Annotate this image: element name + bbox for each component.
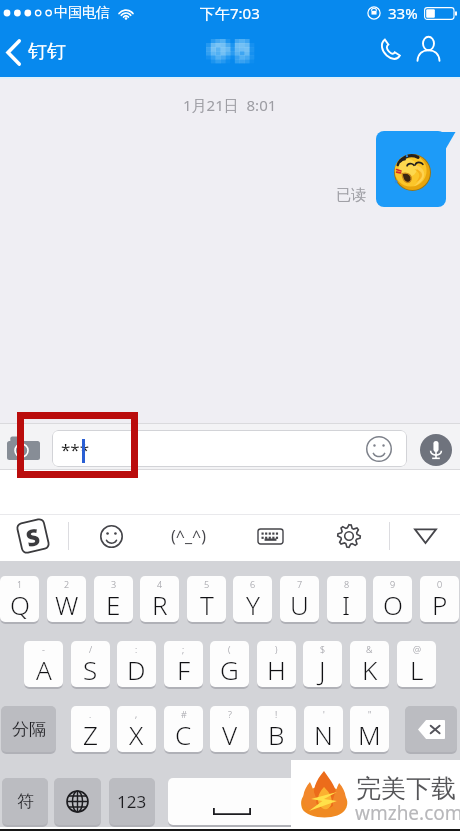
staticText: ) [275, 643, 278, 655]
staticText: Q [10, 587, 30, 622]
button[interactable]: 2 [47, 576, 86, 622]
staticText: 完美下载 [356, 773, 456, 804]
button[interactable]: 8 [327, 576, 366, 622]
staticText: wmzhe.com [355, 800, 460, 826]
staticText: 符 [17, 791, 34, 812]
button[interactable]: 1 [0, 576, 39, 622]
staticText: 钉钉 [28, 40, 66, 64]
button[interactable]: Sogou input [8, 512, 58, 560]
button[interactable]: 6 [233, 576, 272, 622]
staticText: 下午7:03 [200, 3, 260, 23]
staticText: 已读 [336, 186, 366, 205]
button[interactable]: & [350, 641, 389, 687]
staticText: 中国电信 [54, 4, 110, 22]
staticText: B [268, 717, 285, 752]
staticText: P [432, 587, 448, 622]
staticText: K [362, 652, 378, 687]
button[interactable]: Switch language [54, 778, 101, 825]
button[interactable]: 3 [94, 576, 133, 622]
staticText: 6 [250, 578, 256, 590]
staticText: *** [61, 438, 90, 461]
button[interactable]: Emoji [87, 514, 135, 558]
button[interactable]: 5 [187, 576, 226, 622]
staticText: U [290, 587, 309, 622]
button[interactable]: - [24, 641, 63, 687]
button[interactable]: 123 [109, 778, 155, 825]
staticText: 33% [388, 3, 418, 23]
button[interactable]: 钉钉 [0, 29, 74, 75]
button[interactable]: 9 [373, 576, 412, 622]
button[interactable]: @ [397, 641, 436, 687]
staticText: 3 [111, 578, 117, 590]
button[interactable]: , [117, 706, 156, 752]
button[interactable]: Backspace [405, 706, 457, 752]
staticText: ? [228, 708, 232, 720]
button[interactable]: Contact info [410, 27, 447, 71]
button[interactable]: 4 [140, 576, 179, 622]
button[interactable]: ; [164, 641, 203, 687]
staticText: ( [228, 643, 231, 655]
staticText: 5 [204, 578, 210, 590]
staticText: 9 [390, 578, 396, 590]
staticText: A [36, 652, 52, 687]
staticText: I [342, 587, 351, 622]
button[interactable]: Emoji [365, 435, 393, 463]
staticText: Z [83, 717, 98, 752]
staticText: " [368, 708, 372, 720]
button[interactable]: ! [257, 706, 296, 752]
staticText: 2 [64, 578, 70, 590]
staticText: X [129, 717, 144, 752]
button[interactable]: Keyboard layout [246, 514, 294, 558]
button[interactable]: Hide keyboard [400, 514, 450, 558]
staticText: H [267, 652, 286, 687]
staticText: @ [413, 643, 421, 655]
button[interactable]: / [71, 641, 110, 687]
staticText: 8 [344, 578, 350, 590]
staticText: 7 [297, 578, 303, 590]
staticText: F [177, 652, 191, 687]
button[interactable]: 分隔 [1, 706, 56, 752]
staticText: - [42, 643, 45, 655]
staticText: L [410, 652, 424, 687]
button[interactable]: 7 [280, 576, 319, 622]
staticText: S [83, 652, 98, 687]
staticText: 4 [157, 578, 163, 590]
button[interactable]: 符 [2, 778, 48, 825]
button[interactable]: Voice message [419, 433, 452, 466]
button[interactable]: ' [304, 706, 343, 752]
staticText: 分隔 [12, 719, 46, 740]
button[interactable]: . [71, 706, 110, 752]
staticText: D [127, 652, 146, 687]
button[interactable]: $ [303, 641, 342, 687]
staticText: , [135, 708, 138, 720]
button[interactable]: " [350, 706, 389, 752]
staticText: M [358, 717, 381, 752]
staticText: G [220, 652, 239, 687]
button[interactable]: : [117, 641, 156, 687]
staticText: V [222, 717, 238, 752]
button[interactable]: Call [371, 29, 407, 71]
staticText: R [152, 587, 168, 622]
staticText: W [55, 587, 79, 622]
button[interactable]: *** [52, 430, 407, 467]
staticText: ! [275, 708, 278, 720]
staticText: / [89, 643, 93, 655]
staticText: ; [182, 643, 185, 655]
staticText: & [366, 643, 373, 655]
staticText: 1 [17, 578, 23, 590]
button[interactable]: ? [210, 706, 249, 752]
button[interactable]: ) [257, 641, 296, 687]
button[interactable]: Camera [3, 432, 44, 464]
button[interactable]: Kaomoji [165, 514, 213, 558]
button[interactable]: Space [168, 778, 457, 825]
button[interactable]: Settings [325, 514, 373, 558]
staticText: C [175, 717, 192, 752]
staticText: E [106, 587, 121, 622]
staticText: ' [323, 708, 325, 720]
staticText: (^_^) [171, 525, 207, 547]
staticText: N [314, 717, 333, 752]
button[interactable]: # [164, 706, 203, 752]
button[interactable]: ( [210, 641, 249, 687]
staticText: 123 [117, 790, 147, 813]
button[interactable]: 0 [420, 576, 459, 622]
